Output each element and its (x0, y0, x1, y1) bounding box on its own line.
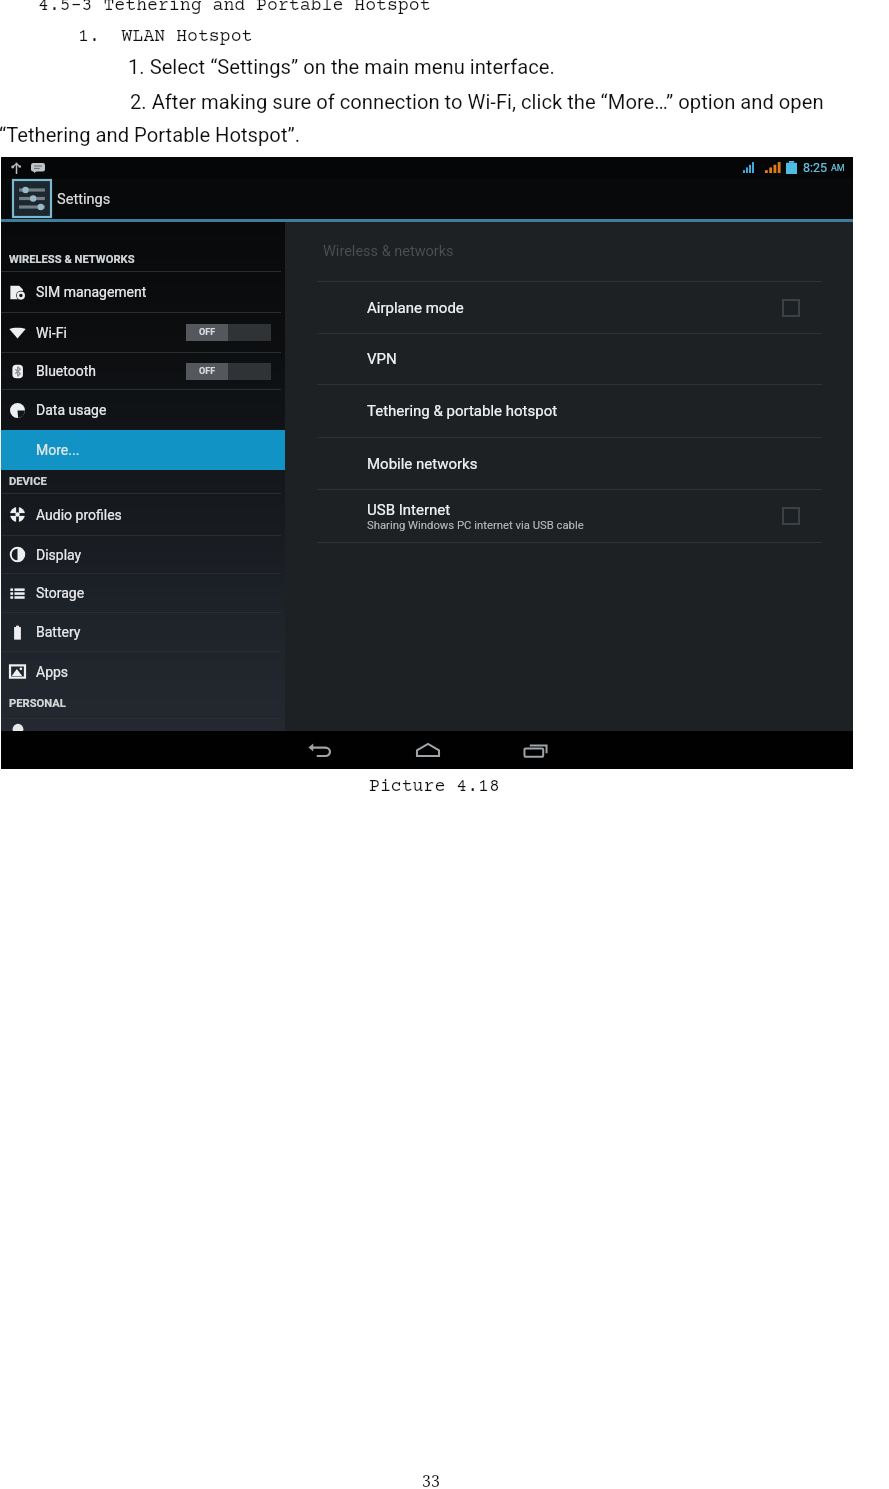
staticText: SIM management (36, 284, 147, 300)
staticText: WIRELESS & NETWORKS (9, 253, 135, 266)
staticText: Mobile networks (367, 455, 478, 473)
button[interactable]: More... (1, 430, 285, 470)
staticText: DEVICE (9, 475, 47, 488)
button[interactable]: Storage (1, 574, 285, 612)
button[interactable]: Battery (1, 613, 285, 651)
staticText: Data usage (36, 402, 107, 418)
staticText: OFF (199, 366, 216, 377)
staticText: “Tethering and Portable Hotspot”. (0, 123, 301, 147)
staticText: 4.5-3 Tethering and Portable Hotspot (38, 0, 431, 16)
staticText: Audio profiles (36, 507, 122, 523)
button[interactable]: VPN (285, 334, 853, 384)
staticText: Picture 4.18 (369, 777, 500, 797)
staticText: 33 (422, 1470, 440, 1489)
staticText: Wireless & networks (323, 243, 454, 260)
staticText: More... (36, 442, 80, 458)
staticText: PERSONAL (9, 697, 66, 710)
button[interactable]: Back (300, 731, 340, 769)
staticText: Sharing Windows PC internet via USB cabl… (367, 519, 584, 532)
staticText: Airplane mode (367, 299, 464, 317)
staticText: Bluetooth (36, 363, 96, 379)
button[interactable]: Display (1, 536, 285, 573)
button[interactable]: Tethering & portable hotspot (285, 385, 853, 437)
staticText: 1. WLAN Hotspot (78, 27, 253, 47)
staticText: Settings (57, 190, 111, 207)
staticText: VPN (367, 350, 397, 368)
button[interactable] (1, 719, 285, 731)
button[interactable]: Bluetooth (1, 353, 285, 389)
staticText: 2. After making sure of connection to Wi… (130, 90, 824, 114)
staticText: Apps (36, 664, 69, 680)
button[interactable]: Mobile networks (285, 438, 853, 489)
staticText: Storage (36, 585, 85, 601)
button[interactable]: USB Internet (285, 490, 853, 542)
staticText: Wi-Fi (36, 325, 67, 341)
staticText: 8:25 (803, 160, 828, 175)
staticText: OFF (199, 327, 216, 338)
button[interactable]: Wi-Fi (1, 313, 285, 352)
button[interactable]: SIM management (1, 272, 285, 312)
staticText: Battery (36, 624, 81, 640)
button[interactable]: Audio profiles (1, 494, 285, 535)
staticText: 1. Select “Settings” on the main menu in… (128, 55, 555, 79)
button[interactable]: Airplane mode (285, 282, 853, 333)
button[interactable]: Home (408, 731, 448, 769)
staticText: Display (36, 547, 82, 563)
button[interactable]: Apps (1, 652, 285, 691)
button[interactable]: Recent apps (516, 731, 556, 769)
button[interactable]: Data usage (1, 390, 285, 430)
staticText: USB Internet (367, 501, 451, 519)
staticText: AM (831, 163, 845, 174)
staticText: Tethering & portable hotspot (367, 402, 558, 420)
